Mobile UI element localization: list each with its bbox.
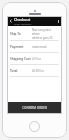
staticText: address goes 25	[32, 36, 53, 40]
button[interactable]: Total	[7, 65, 62, 76]
button[interactable]: CONFIRM ORDER	[7, 102, 62, 114]
staticText: order summary	[14, 22, 32, 25]
staticText: CONFIRM ORDER	[7, 106, 62, 110]
staticText: 45.90 Eur	[32, 69, 44, 73]
button[interactable]: More options	[55, 16, 62, 26]
button[interactable]: Ship To	[7, 28, 62, 40]
staticText: mastercard	[32, 45, 47, 49]
button[interactable]: Payment	[7, 41, 62, 52]
staticText: Ship To	[10, 32, 21, 36]
staticText: Payment	[10, 45, 24, 49]
staticText: Checkout	[14, 17, 31, 22]
staticText: 4.5 Eur	[32, 57, 41, 61]
staticText: Shipping Cost	[10, 57, 31, 61]
button[interactable]: Back	[7, 16, 14, 26]
staticText: Total	[10, 69, 18, 73]
staticText: Nice cozy place where	[32, 28, 59, 36]
button[interactable]: Shipping Cost	[7, 53, 62, 64]
